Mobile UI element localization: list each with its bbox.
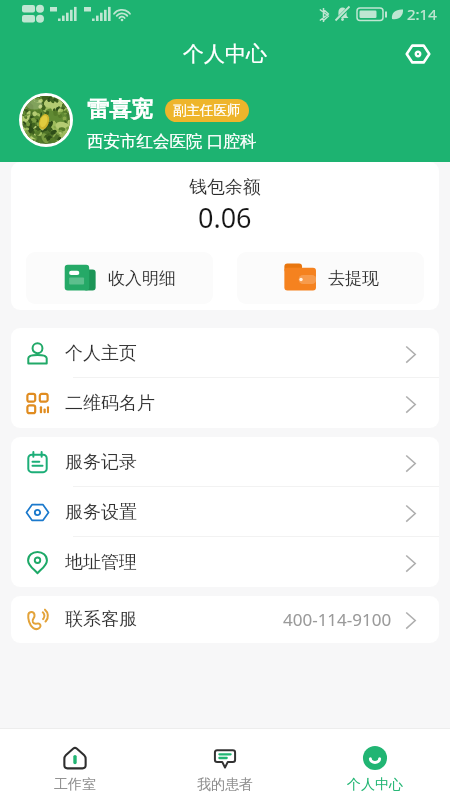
staticText: 服务设置 xyxy=(65,501,137,524)
staticText: 去提现 xyxy=(328,268,379,289)
button[interactable]: 服务设置 xyxy=(11,487,439,537)
staticText: 联系客服 xyxy=(65,608,137,631)
staticText: 0.06 xyxy=(198,199,252,236)
button[interactable]: 雷喜宽 xyxy=(19,80,450,160)
button[interactable]: 我的患者 xyxy=(150,729,300,800)
button[interactable]: 二维码名片 xyxy=(11,378,439,428)
staticText: 二维码名片 xyxy=(65,392,155,415)
staticText: 工作室 xyxy=(54,776,96,794)
staticText: 服务记录 xyxy=(65,451,137,474)
button[interactable]: 地址管理 xyxy=(11,537,439,587)
button[interactable]: 工作室 xyxy=(0,729,150,800)
button[interactable]: 服务记录 xyxy=(11,437,439,487)
staticText: 副主任医师 xyxy=(173,102,241,119)
staticText: 个人主页 xyxy=(65,342,137,365)
staticText: 地址管理 xyxy=(65,551,137,574)
button[interactable]: 收入明细 xyxy=(26,252,213,304)
staticText: 我的患者 xyxy=(197,776,253,794)
staticText: 2:14 xyxy=(407,4,437,24)
staticText: 雷喜宽 xyxy=(87,96,153,124)
button[interactable]: 个人主页 xyxy=(11,328,439,378)
button[interactable]: Settings xyxy=(400,36,436,72)
staticText: 个人中心 xyxy=(183,41,267,67)
staticText: 钱包余额 xyxy=(189,176,261,199)
staticText: 收入明细 xyxy=(108,268,176,289)
staticText: 个人中心 xyxy=(347,776,403,794)
button[interactable]: 去提现 xyxy=(237,252,424,304)
staticText: 西安市红会医院 口腔科 xyxy=(87,129,257,152)
staticText: 400-114-9100 xyxy=(283,608,392,631)
button[interactable]: 联系客服 xyxy=(11,596,439,643)
button[interactable]: 个人中心 xyxy=(300,729,450,800)
